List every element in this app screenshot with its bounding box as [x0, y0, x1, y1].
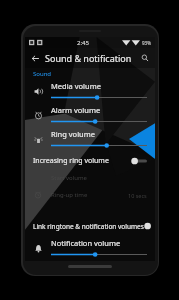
staticText: 93%	[142, 40, 151, 46]
button[interactable]: Search	[135, 48, 155, 68]
staticText: Increasing ring volume	[33, 156, 109, 166]
staticText: Ring-up time	[51, 191, 88, 199]
button[interactable]: Increasing ring volume	[25, 151, 155, 171]
staticText: Notification volume	[51, 238, 121, 248]
staticText: Ring volume	[51, 129, 95, 139]
staticText: Media volume	[51, 81, 101, 91]
staticText: Sound	[33, 70, 52, 78]
staticText: 10 secs	[128, 192, 147, 199]
staticText: Link ringtone & notification volumes	[33, 222, 144, 231]
staticText: Start volume	[51, 174, 87, 182]
button[interactable]: Alarm volume	[25, 103, 155, 127]
button[interactable]: Notification volume	[25, 236, 155, 260]
staticText: Sound & notification	[45, 52, 132, 64]
button[interactable]: Ring volume	[25, 127, 155, 151]
button[interactable]: Ring-up time	[25, 184, 155, 206]
button[interactable]: Navigate up	[25, 48, 45, 68]
button[interactable]: Link ringtone & notification volumes	[25, 216, 155, 236]
staticText: 2:45	[77, 39, 89, 47]
button[interactable]: Media volume	[25, 79, 155, 103]
staticText: Alarm volume	[51, 105, 101, 115]
